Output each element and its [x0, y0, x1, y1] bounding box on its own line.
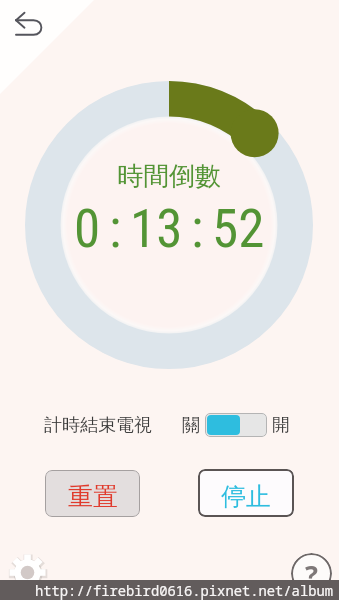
staticText: 時間倒數: [117, 160, 221, 193]
button[interactable]: Help: [291, 553, 332, 594]
staticText: :: [191, 198, 204, 260]
staticText: http://firebird0616.pixnet.net/album: [35, 581, 334, 600]
button[interactable]: 停止: [198, 469, 294, 517]
button[interactable]: Turn TV off when timer ends: [205, 413, 267, 437]
staticText: :: [109, 198, 122, 260]
staticText: 重置: [68, 481, 118, 512]
staticText: 13: [130, 198, 183, 260]
staticText: 0: [74, 198, 101, 260]
staticText: 開: [272, 414, 290, 437]
staticText: 計時結束電視: [44, 414, 152, 437]
button[interactable]: Back: [4, 4, 52, 52]
staticText: ?: [305, 556, 318, 593]
staticText: 關: [182, 414, 200, 437]
button[interactable]: 重置: [45, 470, 140, 517]
staticText: 52: [212, 198, 265, 260]
staticText: 停止: [221, 481, 271, 512]
button[interactable]: Settings: [9, 554, 46, 591]
